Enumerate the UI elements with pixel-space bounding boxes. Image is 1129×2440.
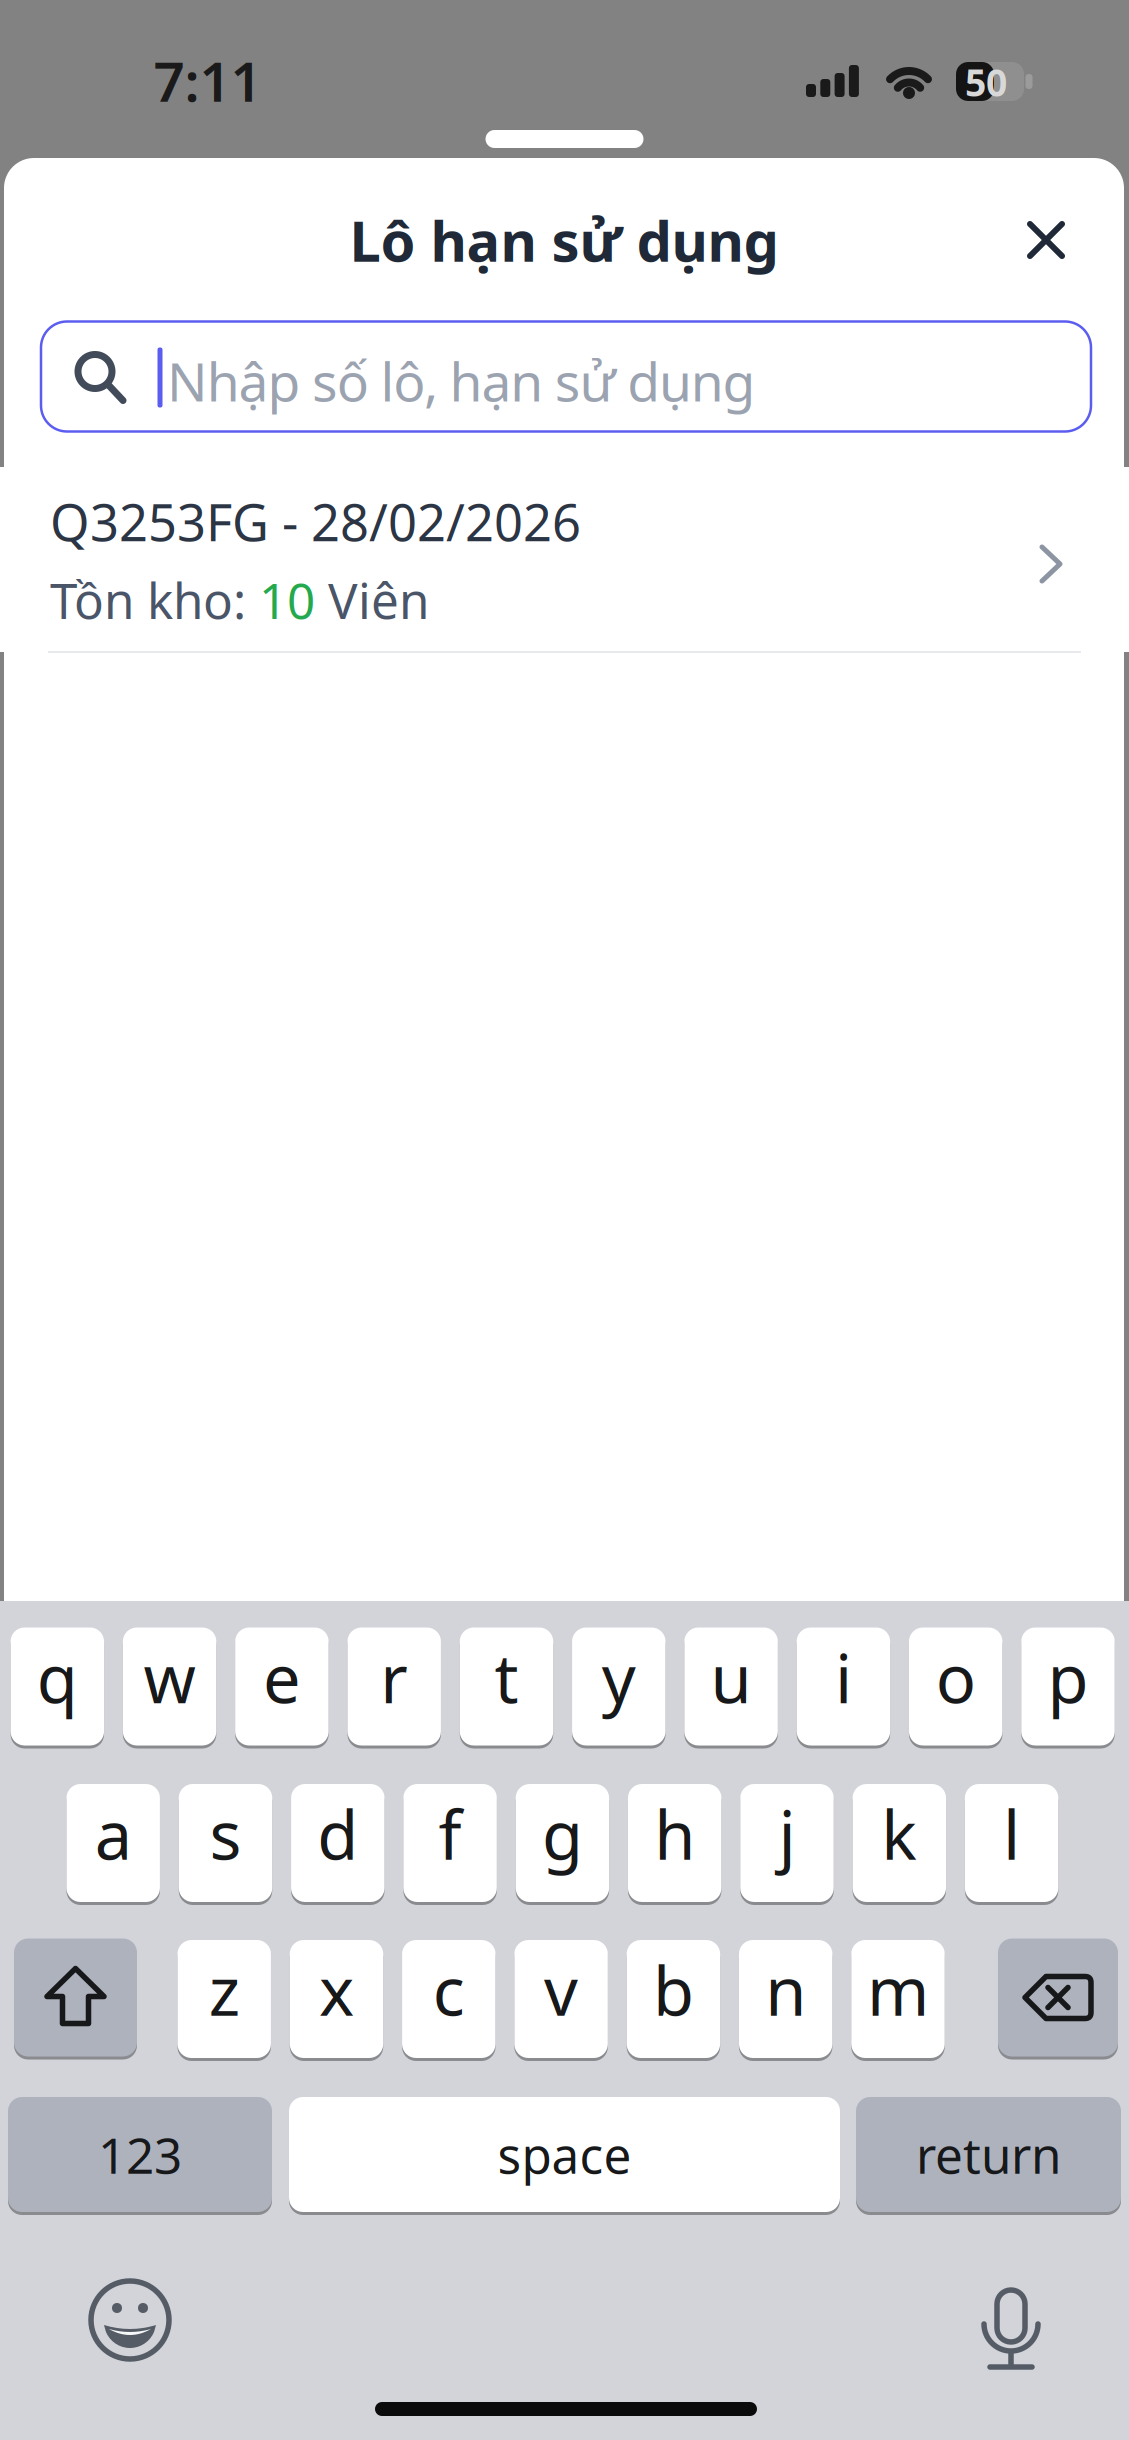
staticText: v	[544, 1946, 578, 2034]
button[interactable]: x	[290, 1938, 383, 2059]
staticText: e	[263, 1633, 301, 1722]
button[interactable]: b	[627, 1938, 720, 2059]
button[interactable]: Q3253FG - 28/02/2026	[0, 467, 1129, 653]
staticText: Viên	[315, 567, 429, 632]
staticText: a	[95, 1790, 132, 1878]
button[interactable]: d	[291, 1782, 385, 1903]
staticText: h	[654, 1790, 695, 1878]
button[interactable]: return	[856, 2095, 1121, 2213]
staticText: d	[317, 1790, 358, 1878]
staticText: Lô hạn sử dụng	[349, 203, 778, 277]
staticText: return	[916, 2122, 1061, 2187]
button[interactable]: 123	[8, 2095, 272, 2213]
staticText: t	[494, 1633, 518, 1722]
button[interactable]: w	[123, 1626, 216, 1747]
staticText: k	[881, 1790, 917, 1878]
button[interactable]: i	[797, 1626, 890, 1747]
staticText: 123	[98, 2122, 182, 2187]
button[interactable]: p	[1021, 1626, 1115, 1747]
staticText: n	[765, 1946, 806, 2034]
staticText: u	[711, 1633, 752, 1722]
button[interactable]: e	[235, 1626, 329, 1747]
button[interactable]: j	[740, 1782, 834, 1903]
staticText: 50	[965, 57, 1007, 107]
button[interactable]: n	[739, 1938, 832, 2059]
staticText: 10	[259, 567, 315, 632]
button[interactable]	[75, 2265, 185, 2375]
staticText: Tồn kho:	[50, 567, 259, 632]
staticText: m	[867, 1946, 929, 2034]
staticText: s	[209, 1790, 241, 1878]
button[interactable]: c	[402, 1938, 495, 2059]
button[interactable]: s	[179, 1782, 272, 1903]
button[interactable]	[14, 1938, 137, 2059]
button[interactable]: t	[460, 1626, 553, 1747]
staticText: i	[835, 1633, 852, 1722]
button[interactable]: r	[347, 1626, 441, 1747]
button[interactable]: o	[909, 1626, 1002, 1747]
staticText: space	[497, 2122, 631, 2187]
button[interactable]: space	[289, 2095, 840, 2213]
staticText: y	[602, 1633, 636, 1722]
staticText: w	[144, 1633, 196, 1722]
staticText: f	[439, 1790, 462, 1878]
staticText: 7:11	[153, 44, 261, 117]
button[interactable]: l	[965, 1782, 1058, 1903]
button[interactable]: u	[684, 1626, 778, 1747]
staticText: Nhập số lô, hạn sử dụng	[167, 345, 756, 416]
button[interactable]: z	[177, 1938, 271, 2059]
staticText: x	[319, 1946, 354, 2034]
staticText: g	[542, 1790, 583, 1878]
button[interactable]: h	[628, 1782, 721, 1903]
button[interactable]	[956, 2267, 1066, 2377]
staticText: l	[1003, 1790, 1020, 1878]
staticText: c	[433, 1946, 465, 2034]
button[interactable]: v	[514, 1938, 608, 2059]
staticText: o	[936, 1633, 976, 1722]
staticText: p	[1047, 1633, 1088, 1722]
button[interactable]	[1001, 195, 1091, 285]
staticText: z	[209, 1946, 240, 2034]
button[interactable]: a	[66, 1782, 160, 1903]
staticText: r	[380, 1633, 408, 1722]
button[interactable]: q	[10, 1626, 104, 1747]
button[interactable]: Nhập số lô, hạn sử dụng	[41, 321, 1091, 431]
staticText: Q3253FG - 28/02/2026	[50, 488, 581, 555]
button[interactable]: k	[853, 1782, 946, 1903]
staticText: j	[778, 1790, 795, 1878]
button[interactable]: m	[851, 1938, 945, 2059]
button[interactable]: f	[403, 1782, 497, 1903]
button[interactable]: y	[572, 1626, 665, 1747]
staticText: q	[37, 1633, 78, 1722]
button[interactable]: g	[516, 1782, 609, 1903]
staticText: b	[653, 1946, 694, 2034]
button[interactable]	[998, 1938, 1118, 2059]
